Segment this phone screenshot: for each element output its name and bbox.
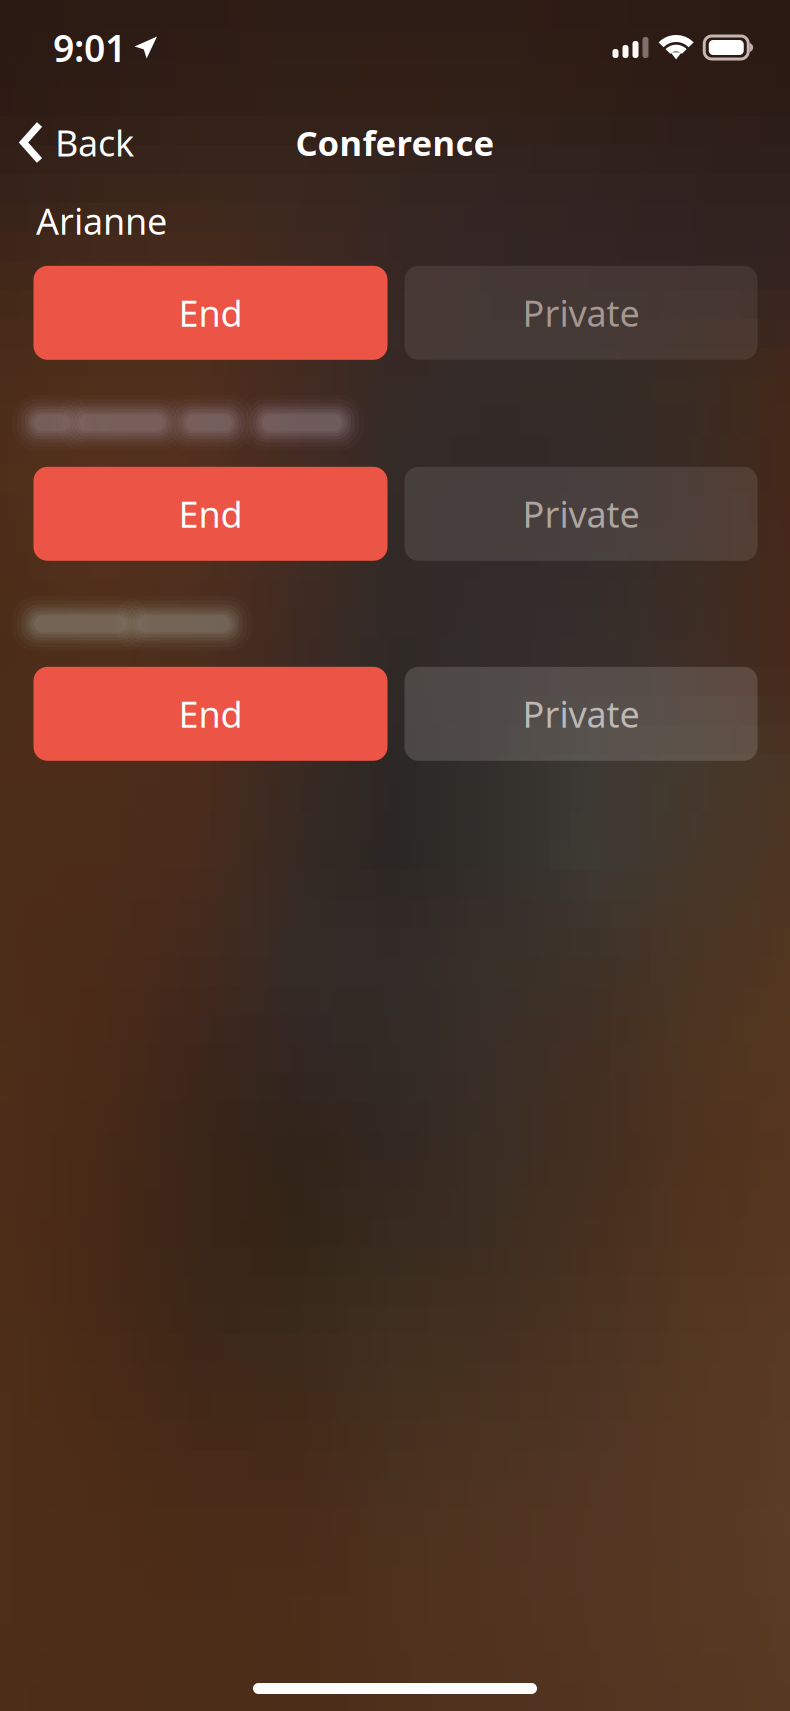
staticText: Private [522, 289, 639, 337]
button[interactable]: Private [404, 667, 757, 761]
staticText: Conference [295, 119, 494, 165]
staticText: Arianne [36, 197, 167, 245]
button[interactable]: End [33, 667, 387, 761]
staticText: Back [55, 119, 134, 166]
button[interactable]: End [33, 266, 387, 360]
button[interactable]: Back [0, 95, 152, 190]
staticText: 9:01 [53, 23, 126, 72]
staticText: Private [522, 690, 639, 738]
button[interactable]: Private [404, 266, 757, 360]
staticText: Private [522, 490, 639, 538]
staticText: End [178, 289, 242, 337]
staticText: End [178, 690, 242, 738]
button[interactable]: End [33, 467, 387, 561]
staticText: End [178, 490, 242, 538]
button[interactable]: Private [404, 467, 757, 561]
